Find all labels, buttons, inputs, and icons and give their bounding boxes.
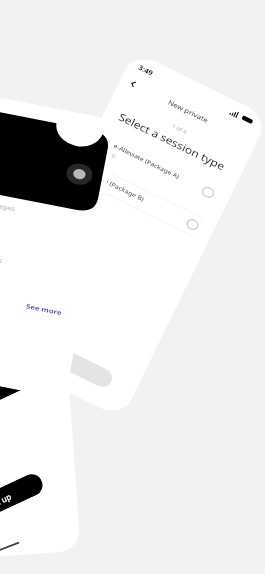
staticText: 75:00	[101, 148, 117, 160]
staticText: Ace-Alleviate (Package A)	[105, 138, 182, 180]
button[interactable]: See more	[25, 302, 62, 317]
button[interactable]: Invize (Package B)	[73, 159, 216, 243]
staticText: 1 of 4	[171, 122, 188, 136]
staticText: Invize (Package B)	[90, 170, 146, 203]
button[interactable]: Ace-Alleviate (Package A)	[81, 127, 232, 225]
button[interactable]	[57, 349, 116, 390]
staticText: Select a session type	[117, 110, 228, 173]
staticText: Upcoming bookings	[0, 243, 3, 265]
staticText: New private	[167, 97, 210, 124]
button[interactable]: Sign up	[0, 471, 46, 532]
staticText: $0	[97, 155, 106, 164]
staticText: Your active packages	[0, 190, 17, 213]
button[interactable]: Back	[126, 77, 141, 91]
staticText: 3:49	[137, 62, 155, 77]
staticText: Sign up	[0, 490, 13, 513]
